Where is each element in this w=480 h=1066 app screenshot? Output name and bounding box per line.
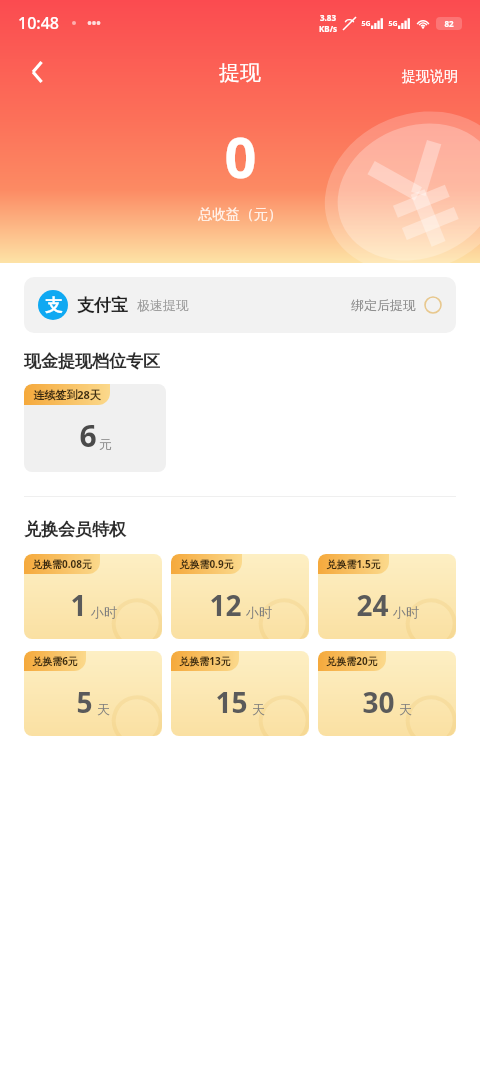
staticText: 天: [399, 701, 412, 717]
staticText: 3.83: [320, 12, 336, 23]
button[interactable]: 返回: [16, 50, 60, 94]
staticText: 5G: [361, 19, 371, 29]
staticText: 兑换需20元: [326, 654, 378, 668]
staticText: 兑换需1.5元: [326, 557, 381, 571]
staticText: KB/s: [319, 23, 337, 34]
staticText: 1: [70, 586, 87, 624]
staticText: 支付宝: [77, 295, 128, 316]
button[interactable]: 兑换需0.9元: [171, 554, 309, 639]
staticText: 现金提现档位专区: [24, 351, 160, 372]
staticText: 兑换需6元: [32, 654, 78, 668]
staticText: 提现: [219, 60, 261, 86]
button[interactable]: 兑换需20元: [318, 651, 456, 736]
staticText: 30: [362, 683, 395, 721]
button[interactable]: 兑换需6元: [24, 651, 162, 736]
staticText: 小时: [393, 604, 419, 620]
staticText: 总收益（元）: [198, 206, 282, 224]
staticText: 24: [356, 586, 389, 624]
staticText: 5G: [388, 19, 398, 29]
button[interactable]: 支: [24, 277, 456, 333]
staticText: 6: [79, 415, 97, 456]
staticText: 小时: [246, 604, 272, 620]
button[interactable]: 连续签到28天: [24, 384, 166, 472]
staticText: 10:48: [18, 12, 59, 34]
staticText: •••: [87, 15, 101, 31]
staticText: 支: [45, 295, 62, 316]
staticText: 兑换需0.08元: [32, 557, 92, 571]
staticText: 12: [209, 586, 242, 624]
staticText: 兑换会员特权: [24, 519, 126, 540]
staticText: 0: [224, 118, 257, 194]
staticText: 小时: [91, 604, 117, 620]
staticText: 连续签到28天: [33, 387, 101, 402]
staticText: 绑定后提现: [351, 297, 416, 313]
staticText: 15: [215, 683, 248, 721]
staticText: 元: [99, 436, 112, 452]
staticText: 82: [444, 18, 454, 29]
button[interactable]: 兑换需1.5元: [318, 554, 456, 639]
button[interactable]: 兑换需13元: [171, 651, 309, 736]
staticText: 极速提现: [137, 297, 189, 313]
button[interactable]: 兑换需0.08元: [24, 554, 162, 639]
button[interactable]: 提现说明: [396, 62, 464, 92]
staticText: 提现说明: [402, 68, 458, 86]
staticText: 兑换需13元: [179, 654, 231, 668]
staticText: 兑换需0.9元: [179, 557, 234, 571]
staticText: 天: [97, 701, 110, 717]
staticText: 天: [252, 701, 265, 717]
staticText: 5: [76, 683, 93, 721]
